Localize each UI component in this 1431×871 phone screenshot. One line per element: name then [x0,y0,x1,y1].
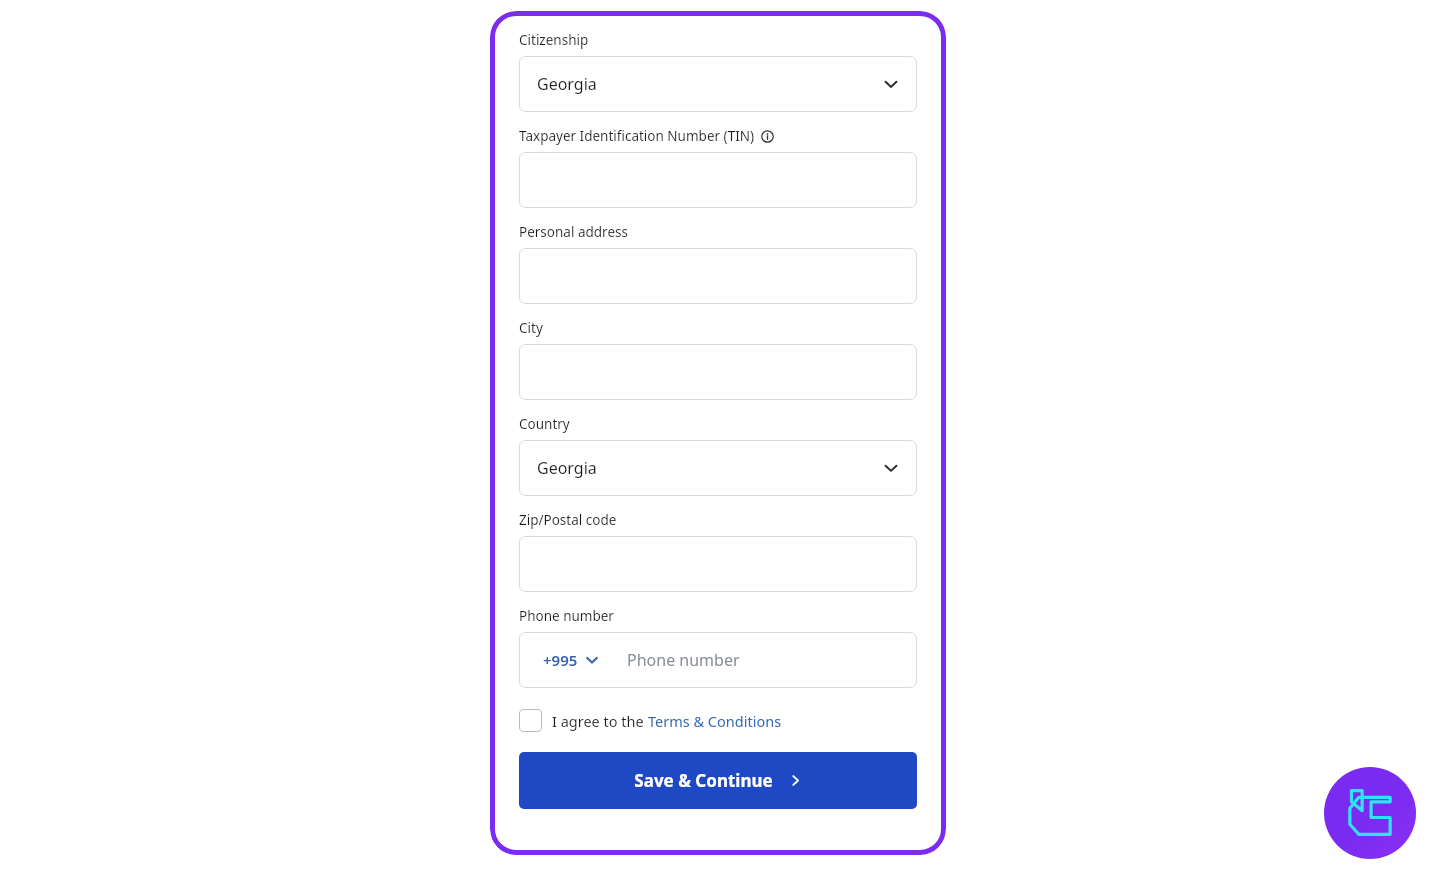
button[interactable]: Save & Continue [519,752,917,809]
staticText: City [519,319,543,337]
button[interactable]: I agree to the [519,709,782,732]
button[interactable] [519,248,917,304]
other: More information [761,130,774,143]
button[interactable]: Terms & Conditions [648,711,782,731]
button[interactable]: Georgia [519,440,917,496]
staticText: Phone number [627,649,740,671]
staticText: Zip/Postal code [519,511,617,529]
button[interactable]: +995 [519,632,609,688]
staticText: Save & Continue [634,769,773,792]
button[interactable]: Assistant [1324,767,1416,859]
staticText: Georgia [537,73,883,95]
button[interactable]: Georgia [519,56,917,112]
staticText: I agree to the [552,711,648,731]
staticText: Phone number [519,607,614,625]
staticText: +995 [543,650,578,670]
staticText: Citizenship [519,31,589,49]
button[interactable] [519,152,917,208]
staticText: Georgia [537,457,883,479]
staticText: Country [519,415,570,433]
button[interactable]: Phone number [609,632,917,688]
button[interactable] [519,344,917,400]
button[interactable] [519,536,917,592]
staticText: Taxpayer Identification Number (TIN) [519,127,755,145]
staticText: Personal address [519,223,628,241]
